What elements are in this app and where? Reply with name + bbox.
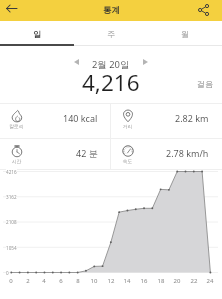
staticText: 걸음: [197, 79, 213, 89]
staticText: 4216: [6, 169, 17, 175]
button[interactable]: Back: [0, 0, 24, 21]
button[interactable]: 시간: [0, 139, 110, 169]
staticText: 14: [121, 277, 133, 285]
button[interactable]: 월: [148, 0, 222, 46]
staticText: 2108: [6, 219, 17, 225]
staticText: 4: [38, 277, 50, 285]
staticText: 10: [88, 277, 100, 285]
staticText: 24: [204, 277, 216, 285]
button[interactable]: 주: [74, 0, 148, 46]
button[interactable]: 거리: [111, 104, 221, 138]
staticText: 속도: [111, 158, 144, 164]
staticText: 0: [6, 270, 9, 276]
staticText: 2: [22, 277, 34, 285]
button[interactable]: 속도: [111, 139, 221, 169]
staticText: 8: [72, 277, 84, 285]
staticText: 일: [33, 29, 41, 39]
staticText: 18: [155, 277, 167, 285]
button[interactable]: Previous day: [68, 53, 85, 70]
staticText: 2월 20일: [92, 58, 130, 71]
staticText: 140 kcal: [63, 112, 98, 124]
button[interactable]: 일: [0, 0, 74, 46]
staticText: 칼로리: [0, 123, 33, 129]
staticText: 12: [105, 277, 117, 285]
button[interactable]: 칼로리: [0, 104, 110, 138]
staticText: 6: [55, 277, 67, 285]
staticText: 42 분: [76, 147, 98, 159]
staticText: 16: [138, 277, 150, 285]
staticText: 22: [188, 277, 200, 285]
staticText: 시간: [0, 158, 33, 164]
staticText: 2.82 km: [175, 112, 209, 124]
button[interactable]: Share: [198, 0, 222, 21]
staticText: 월: [181, 29, 189, 39]
staticText: 거리: [111, 123, 144, 129]
staticText: 통계: [103, 5, 120, 16]
staticText: 1054: [6, 245, 17, 251]
staticText: 2.78 km/h: [166, 147, 209, 159]
staticText: 0: [5, 277, 17, 285]
staticText: 4,216: [82, 67, 140, 98]
staticText: 20: [171, 277, 183, 285]
staticText: 주: [107, 29, 115, 39]
staticText: 3162: [6, 194, 17, 200]
button[interactable]: Next day: [137, 53, 154, 70]
